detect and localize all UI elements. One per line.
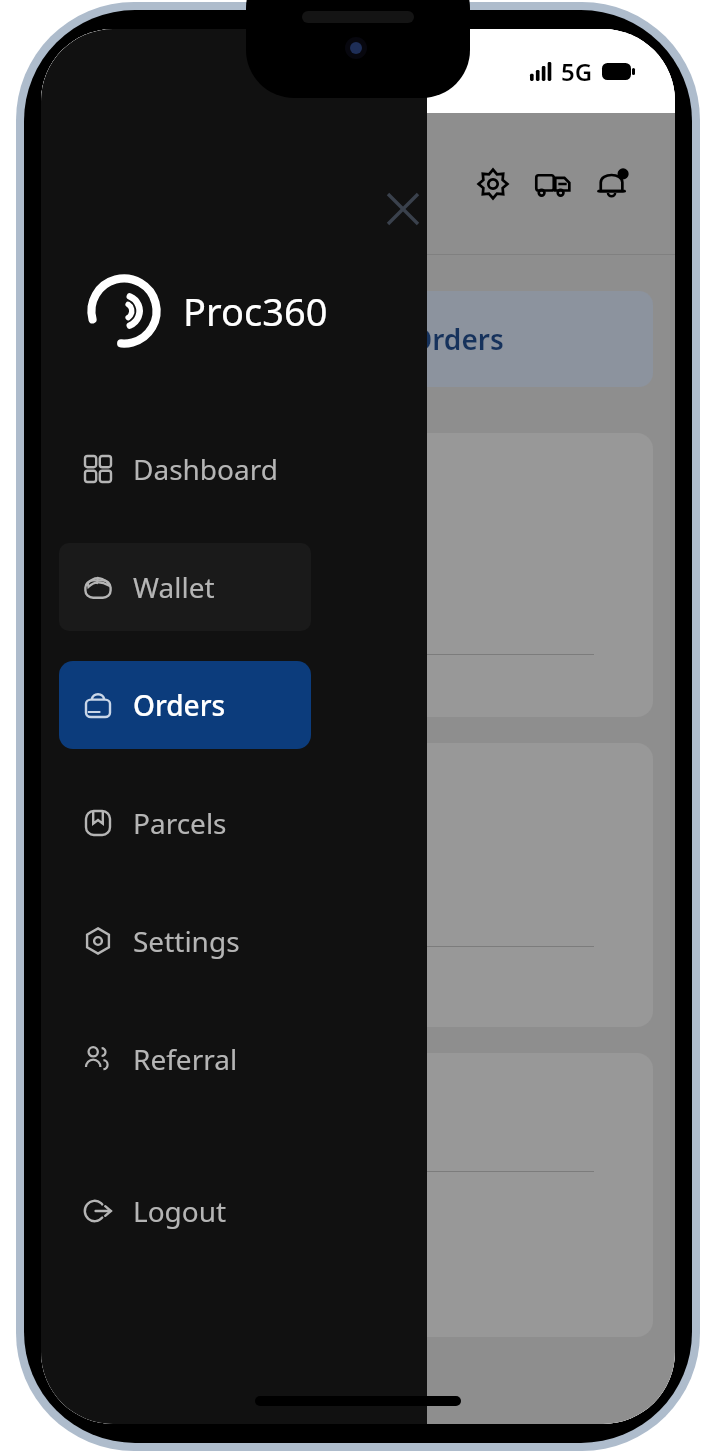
staticText: Parcels [133,804,227,842]
staticText: Proc360 [183,285,328,337]
button[interactable]: Dashboard [59,425,311,513]
staticText: 5G [561,55,593,88]
staticText: Settings [133,922,240,960]
button[interactable]: Parcels [59,779,311,867]
button[interactable]: Logout [59,1167,311,1255]
staticText: Dashboard [133,450,278,488]
staticText: Track your Orders [260,320,504,358]
button[interactable]: Close menu [379,181,427,237]
button[interactable]: Track shipment [525,156,581,212]
staticText: Referral [133,1040,238,1078]
button[interactable]: Settings [465,156,521,212]
button[interactable]: Orders [59,661,311,749]
button[interactable]: Settings [59,897,311,985]
button[interactable]: Referral [59,1015,311,1103]
staticText: Orders [133,686,226,724]
staticText: Logout [133,1192,227,1230]
staticText: Create orders here [85,671,314,706]
button[interactable]: Track your Orders [63,291,653,387]
button[interactable]: Wallet [59,543,311,631]
button[interactable]: Notifications [585,156,641,212]
staticText: Process the order [85,1188,300,1223]
staticText: Wallet [133,568,215,606]
